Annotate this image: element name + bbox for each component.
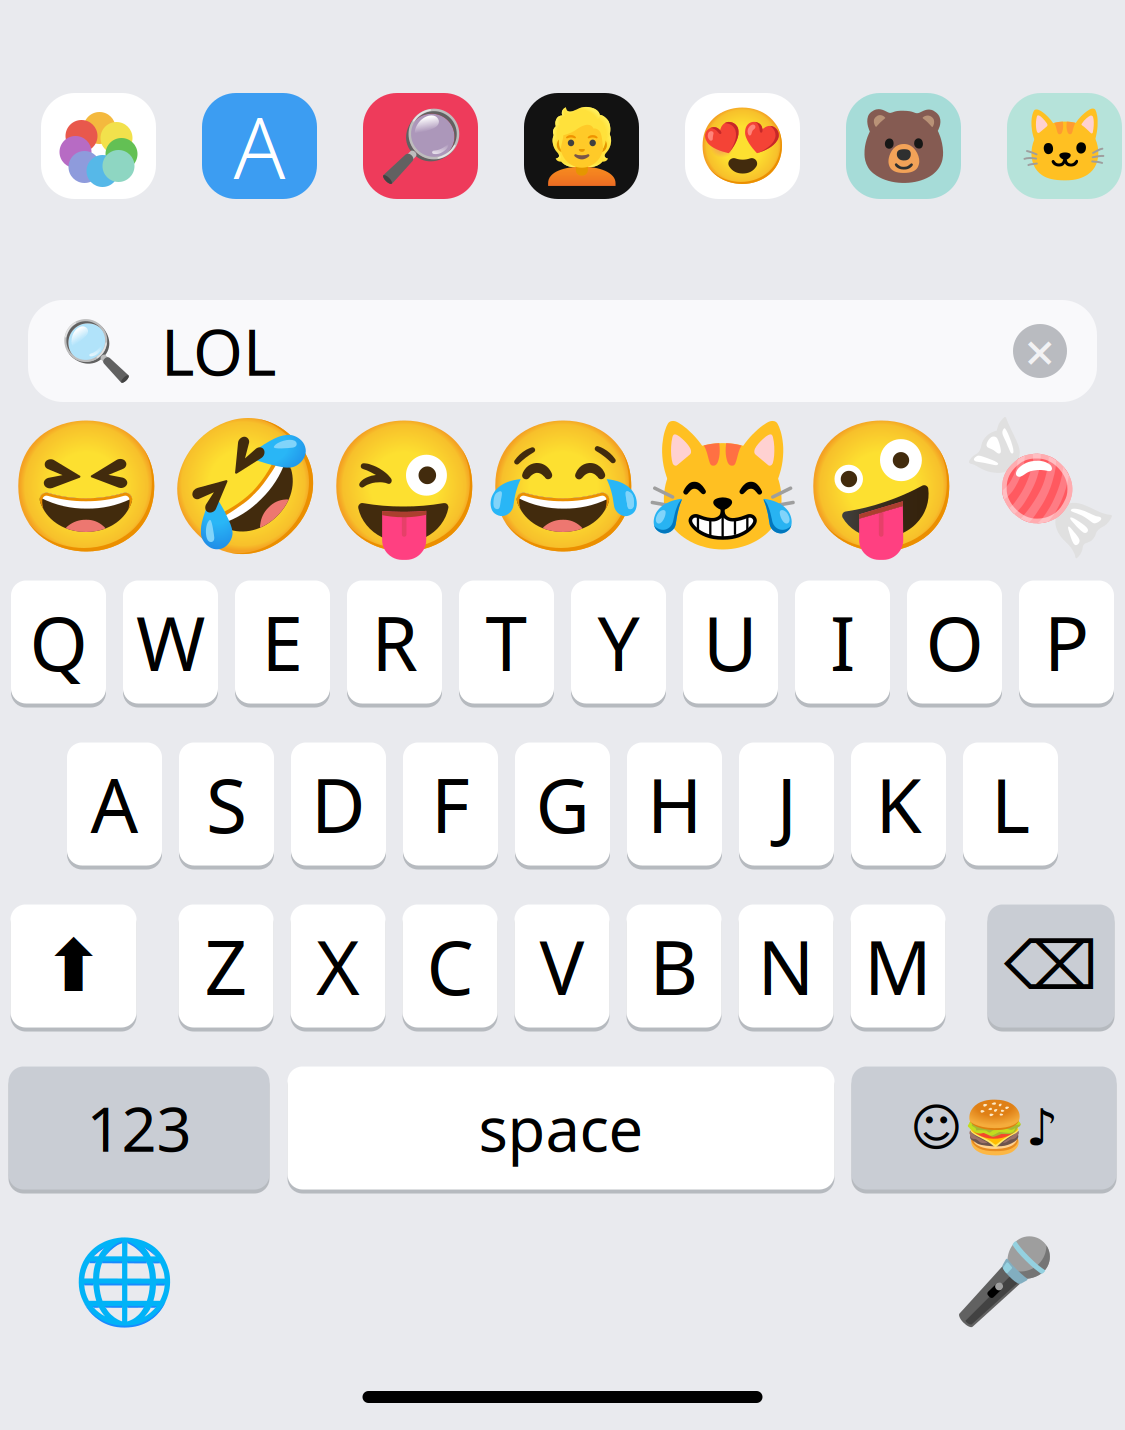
button[interactable]: G — [515, 740, 610, 868]
staticText: E — [261, 592, 303, 692]
staticText: 😂 — [484, 414, 643, 560]
button[interactable]: V — [514, 902, 609, 1030]
button[interactable]: App Store — [202, 93, 317, 199]
button[interactable]: M — [850, 902, 945, 1030]
staticText: R — [371, 592, 417, 692]
staticText: ⌫ — [1004, 928, 1098, 1004]
button[interactable]: O — [907, 578, 1002, 706]
staticText: A — [90, 754, 138, 854]
staticText: 🤪 — [802, 414, 961, 560]
button[interactable]: Emoji — [988, 432, 1093, 542]
button[interactable]: Y — [571, 578, 666, 706]
button[interactable]: Delete — [987, 902, 1114, 1030]
button[interactable]: Emoji — [352, 432, 457, 542]
staticText: T — [485, 592, 527, 692]
button[interactable]: P — [1019, 578, 1114, 706]
button[interactable]: Cat stickers — [1007, 93, 1122, 199]
staticText: H — [647, 754, 702, 854]
staticText: M — [864, 916, 932, 1016]
button[interactable]: D — [291, 740, 386, 868]
staticText: × — [1024, 316, 1055, 386]
staticText: G — [535, 754, 589, 854]
button[interactable]: K — [851, 740, 946, 868]
staticText: 🤣 — [166, 414, 325, 560]
staticText: 😜 — [325, 414, 484, 560]
staticText: V — [539, 916, 584, 1016]
button[interactable]: J — [739, 740, 834, 868]
button[interactable]: Shift — [10, 902, 136, 1030]
staticText: LOL — [161, 308, 277, 393]
button[interactable]: R — [347, 578, 442, 706]
button[interactable]: U — [683, 578, 778, 706]
staticText: ⬆ — [43, 925, 103, 1007]
staticText: W — [136, 592, 205, 692]
staticText: 😍 — [696, 103, 789, 189]
button[interactable]: F — [403, 740, 498, 868]
staticText: 🎤 — [952, 1235, 1055, 1329]
button[interactable]: Emoji and stickers — [851, 1064, 1116, 1192]
button[interactable]: A — [67, 740, 162, 868]
staticText: 🔎 — [377, 106, 463, 186]
staticText: P — [1044, 592, 1089, 692]
staticText: A — [233, 89, 285, 203]
staticText: Z — [204, 916, 247, 1016]
button[interactable]: Image search — [363, 93, 478, 199]
button[interactable]: Space — [287, 1064, 834, 1192]
staticText: space — [478, 1087, 643, 1169]
button[interactable]: L — [963, 740, 1058, 868]
button[interactable]: E — [235, 578, 330, 706]
staticText: 🍬 — [961, 414, 1120, 560]
button[interactable]: Emoji — [511, 432, 616, 542]
button[interactable]: S — [179, 740, 274, 868]
staticText: 🐻 — [858, 105, 948, 187]
staticText: B — [649, 916, 698, 1016]
button[interactable]: H — [627, 740, 722, 868]
staticText: C — [426, 916, 473, 1016]
staticText: S — [206, 754, 247, 854]
button[interactable]: N — [738, 902, 833, 1030]
staticText: Y — [597, 592, 639, 692]
staticText: 🔍 — [60, 317, 133, 384]
staticText: Q — [29, 592, 87, 692]
button[interactable]: Memoji stickers — [685, 93, 800, 199]
staticText: O — [925, 592, 983, 692]
button[interactable]: W — [123, 578, 218, 706]
button[interactable]: Emoji — [829, 432, 934, 542]
button[interactable]: T — [459, 578, 554, 706]
staticText: L — [991, 754, 1030, 854]
button[interactable]: B — [626, 902, 721, 1030]
staticText: 123 — [86, 1087, 191, 1169]
staticText: U — [703, 592, 758, 692]
button[interactable]: Emoji — [193, 432, 298, 542]
staticText: 😹 — [643, 414, 802, 560]
staticText: D — [311, 754, 366, 854]
staticText: X — [316, 916, 360, 1016]
button[interactable]: Next keyboard — [74, 1232, 174, 1332]
button[interactable]: Memoji camera — [524, 93, 639, 199]
button[interactable]: Search field, LOL — [28, 300, 1097, 402]
staticText: 👱 — [536, 105, 626, 187]
staticText: 🌐 — [72, 1235, 175, 1329]
button[interactable]: Z — [178, 902, 273, 1030]
button[interactable]: X — [290, 902, 385, 1030]
staticText: F — [431, 754, 470, 854]
button[interactable]: Emoji — [34, 432, 139, 542]
button[interactable]: Q — [11, 578, 106, 706]
button[interactable]: Emoji — [670, 432, 775, 542]
button[interactable]: I — [795, 578, 890, 706]
button[interactable]: Bear stickers — [846, 93, 961, 199]
staticText: 🐱 — [1019, 105, 1109, 187]
staticText: J — [776, 754, 796, 854]
button[interactable]: Numbers — [8, 1064, 269, 1192]
staticText: ☺🍔♪ — [910, 1099, 1058, 1157]
staticText: 😆 — [7, 414, 166, 560]
button[interactable]: C — [402, 902, 497, 1030]
button[interactable]: Dictate — [954, 1232, 1054, 1332]
staticText: I — [830, 592, 855, 692]
staticText: N — [757, 916, 814, 1016]
button[interactable]: Photos — [41, 93, 156, 199]
staticText: K — [875, 754, 921, 854]
